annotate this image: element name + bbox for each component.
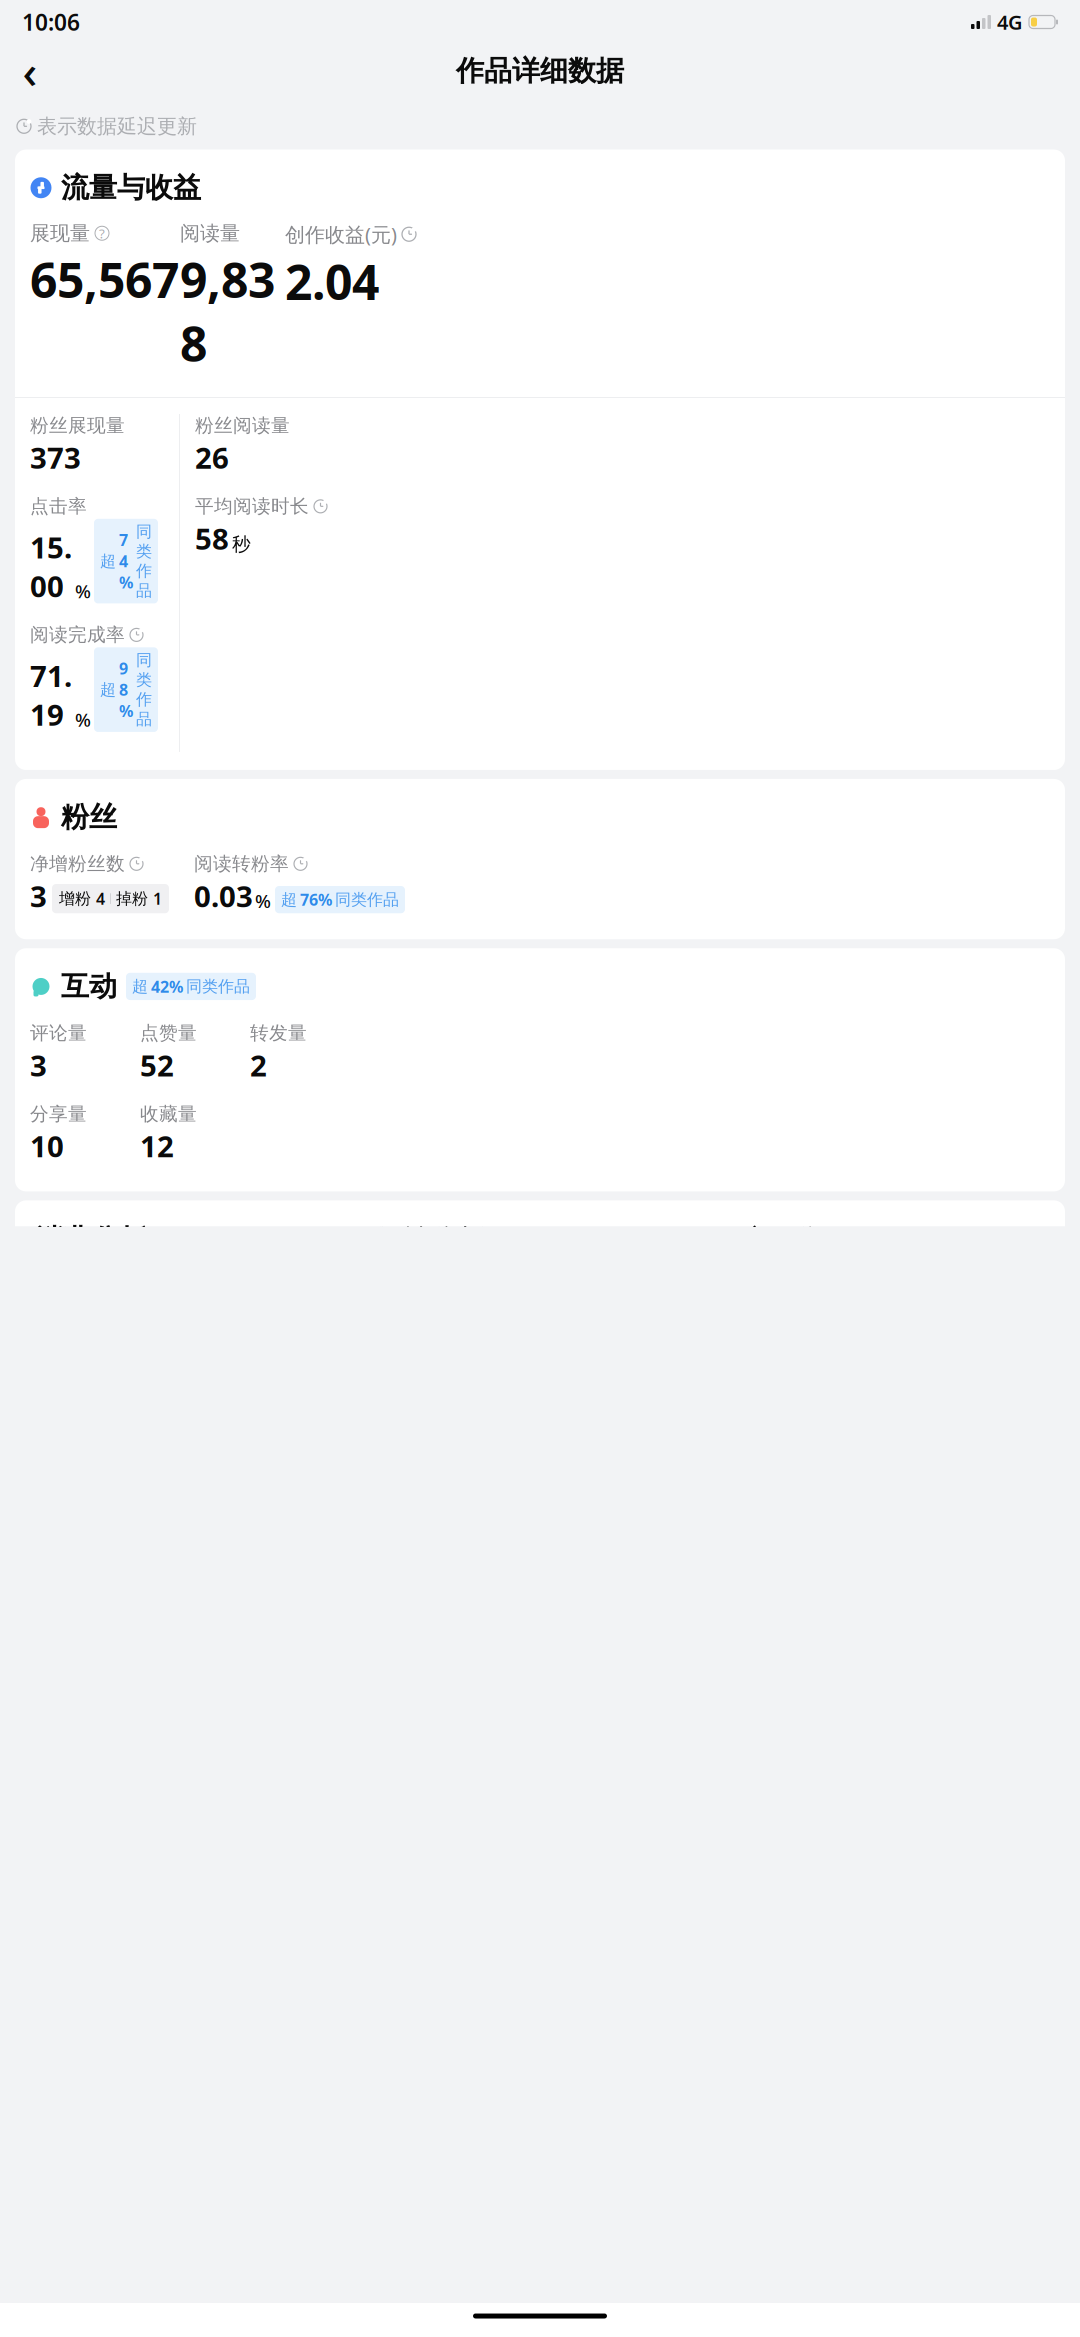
staticText: 增粉 <box>59 889 91 908</box>
staticText: 掉粉 <box>116 889 148 908</box>
staticText: 表示数据延迟更新 <box>37 114 197 139</box>
staticText: 评论量 <box>30 1022 87 1044</box>
staticText: 消费分析 <box>35 1222 147 1257</box>
staticText: 4G <box>997 9 1023 35</box>
staticText: 转发量 <box>250 1022 307 1044</box>
staticText: 3 <box>30 1046 47 1085</box>
staticText: 点击率 <box>30 495 87 518</box>
staticText: 3 <box>30 876 47 915</box>
staticText: 作品详细数据 <box>456 54 624 88</box>
staticText: 同类作品 <box>136 522 152 600</box>
staticText: 同类作品 <box>186 977 250 996</box>
staticText: ? <box>99 224 105 242</box>
staticText: 超 <box>281 890 297 909</box>
staticText: 平均阅读时长 <box>195 495 309 518</box>
staticText: 2 <box>250 1046 267 1085</box>
staticText: 52 <box>140 1046 174 1085</box>
staticText: 点赞量 <box>140 1022 197 1044</box>
staticText: 用户画像 <box>712 1222 824 1257</box>
button[interactable]: 用户画像 <box>702 1222 834 1269</box>
staticText: 同类作品 <box>335 890 399 909</box>
staticText: 1 <box>153 888 162 909</box>
staticText: 71.19 <box>30 656 72 734</box>
staticText: % <box>255 888 271 913</box>
staticText: 秒 <box>232 533 251 556</box>
staticText: 粉丝 <box>61 800 117 834</box>
staticText: 净增粉丝数 <box>30 852 125 875</box>
staticText: 收益分析 <box>374 1222 486 1257</box>
staticText: 98% <box>119 658 133 721</box>
staticText: 74% <box>119 529 133 593</box>
button[interactable]: 收益分析 <box>364 1222 496 1269</box>
staticText: ‹ <box>22 41 37 101</box>
staticText: 0.03 <box>194 876 253 915</box>
staticText: 10 <box>30 1126 64 1165</box>
staticText: 阅读转粉率 <box>194 852 289 875</box>
staticText: 粉丝展现量 <box>30 414 125 437</box>
staticText: 2.04 <box>285 249 379 313</box>
staticText: 收藏量 <box>140 1102 197 1125</box>
staticText: 超 <box>132 977 148 996</box>
staticText: 互动 <box>61 969 117 1004</box>
staticText: 阅读完成率 <box>30 623 125 646</box>
staticText: 展现量 <box>30 221 90 246</box>
staticText: 15.00 <box>30 527 72 605</box>
staticText: 流量与收益 <box>61 171 201 205</box>
staticText: 58 <box>195 519 229 558</box>
staticText: 9,838 <box>180 247 275 375</box>
staticText: % <box>75 579 91 603</box>
button[interactable]: 消费分析 <box>25 1222 157 1269</box>
staticText: 同类作品 <box>136 650 152 729</box>
staticText: 373 <box>30 438 81 477</box>
staticText: 粉丝阅读量 <box>195 414 290 437</box>
staticText: 4 <box>96 888 105 909</box>
staticText: 42% <box>151 976 183 997</box>
staticText: 26 <box>195 438 229 477</box>
staticText: 创作收益(元) <box>285 221 397 248</box>
staticText: 阅读量 <box>180 221 240 246</box>
staticText: 65,567 <box>30 247 179 311</box>
staticText: 分享量 <box>30 1102 87 1125</box>
staticText: 超 <box>100 551 116 571</box>
staticText: 10:06 <box>22 7 80 37</box>
staticText: 12 <box>140 1126 174 1165</box>
staticText: 76% <box>300 889 332 910</box>
button[interactable]: 返回 <box>8 49 52 93</box>
staticText: % <box>75 707 91 732</box>
staticText: 超 <box>100 680 116 699</box>
